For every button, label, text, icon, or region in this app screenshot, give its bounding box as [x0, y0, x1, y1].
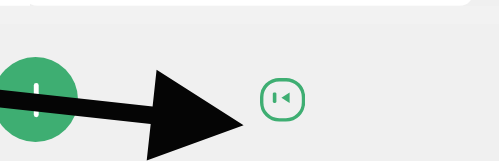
button[interactable]: Skip to previous: [260, 78, 305, 122]
button[interactable]: Pause: [0, 57, 78, 142]
